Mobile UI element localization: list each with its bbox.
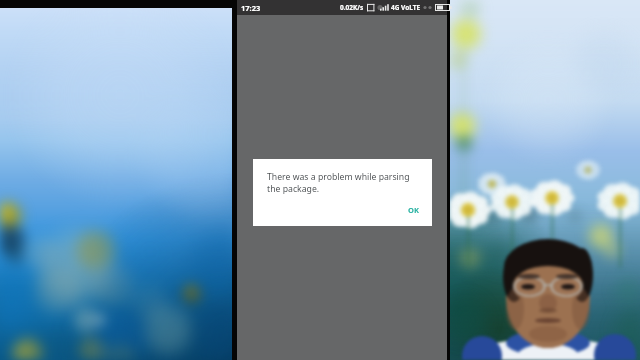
staticText: 0.02K/s	[340, 3, 364, 12]
staticText: 17:23	[241, 3, 261, 13]
staticText: 4G VoLTE	[391, 3, 421, 12]
staticText: OK	[408, 205, 419, 215]
staticText: There was a problem while parsing the pa…	[267, 171, 410, 195]
button[interactable]: OK	[403, 202, 424, 218]
